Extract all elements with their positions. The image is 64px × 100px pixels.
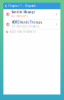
staticText: 60 minutes relaxing xyxy=(11,25,39,28)
staticText: 45 minutes xyxy=(11,14,27,18)
staticText: Add new treatment xyxy=(10,30,36,33)
staticText: MORE Hands Therapy xyxy=(11,21,41,24)
button[interactable]: Add new treatment xyxy=(3,30,60,34)
staticText: Chapter 1 - Dispatch xyxy=(8,4,36,8)
staticText: Swedish Massage xyxy=(11,10,35,14)
button[interactable]: Swedish Massage xyxy=(3,9,60,19)
button[interactable]: MORE Hands Therapy xyxy=(3,19,60,29)
button[interactable]: Back xyxy=(3,3,8,9)
